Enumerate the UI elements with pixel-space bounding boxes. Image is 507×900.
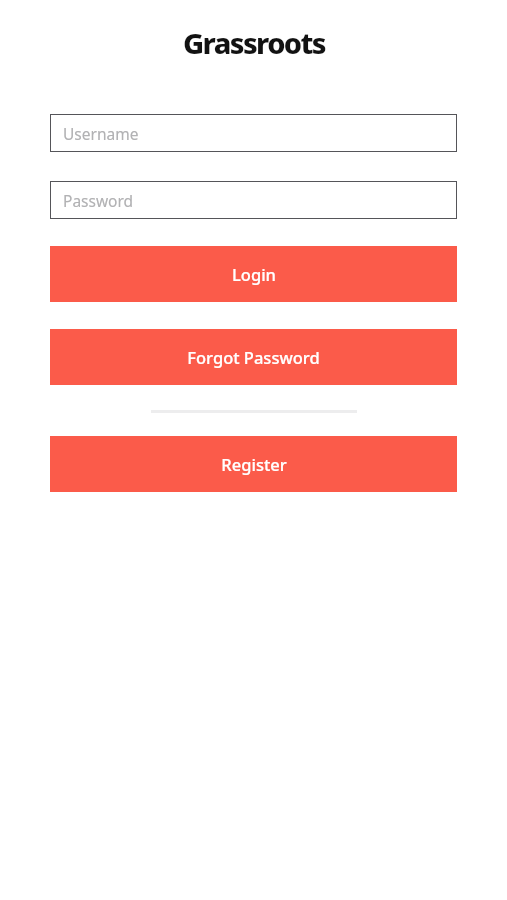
button[interactable]: Forgot Password: [50, 329, 457, 385]
staticText: Register: [221, 453, 287, 475]
staticText: Grassroots: [183, 23, 325, 62]
staticText: Forgot Password: [187, 346, 320, 368]
button[interactable]: Login: [50, 246, 457, 302]
staticText: Login: [232, 263, 276, 285]
staticText: Password: [63, 190, 134, 211]
button[interactable]: Register: [50, 436, 457, 492]
button[interactable]: Password: [50, 181, 457, 219]
staticText: Username: [63, 123, 139, 144]
button[interactable]: Username: [50, 114, 457, 152]
